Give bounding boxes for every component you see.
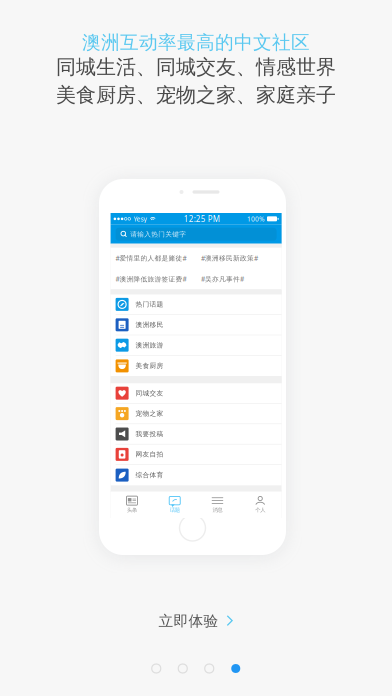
button[interactable]: 综合体育 (111, 465, 282, 485)
staticText: 网友自拍 (136, 450, 164, 458)
button[interactable]: 消息 (196, 491, 239, 518)
button[interactable]: 话题 (153, 491, 196, 518)
staticText: 100% (247, 214, 265, 223)
staticText: #澳洲移民新政策# (201, 254, 258, 263)
staticText: 澳洲移民 (136, 321, 164, 329)
button[interactable]: 头条 (111, 491, 153, 518)
button[interactable]: 个人 (239, 491, 282, 518)
button[interactable]: 宠物之家 (111, 404, 282, 424)
staticText: #澳洲降低旅游签证费# (116, 274, 187, 283)
staticText: 我要投稿 (136, 430, 164, 438)
button[interactable]: 我要投稿 (111, 424, 282, 444)
button[interactable]: #爱情里的人都是赌徒# (111, 248, 196, 269)
staticText: 头条 (127, 507, 137, 513)
staticText: Yesy (134, 214, 147, 223)
staticText: 热门话题 (136, 300, 164, 308)
staticText: 美食厨房 (136, 362, 164, 370)
staticText: 立即体验 (158, 612, 218, 630)
staticText: 个人 (255, 507, 265, 513)
staticText: 请输入热门关键字 (130, 230, 186, 238)
staticText: 12:25 PM (184, 213, 220, 224)
staticText: 同城交友 (136, 389, 164, 397)
button[interactable]: 网友自拍 (111, 444, 282, 465)
staticText: 澳洲旅游 (136, 341, 164, 349)
button[interactable]: 立即体验 (0, 606, 392, 636)
button[interactable]: #吴亦凡事件# (196, 269, 282, 289)
button[interactable]: 热门话题 (111, 294, 282, 315)
button[interactable]: 同城交友 (111, 383, 282, 404)
staticText: 美食厨房、宠物之家、家庭亲子 (56, 83, 336, 107)
staticText: 综合体育 (136, 471, 164, 479)
button[interactable]: #澳洲移民新政策# (196, 248, 282, 269)
button[interactable]: 美食厨房 (111, 356, 282, 376)
staticText: 宠物之家 (136, 409, 164, 418)
button[interactable]: 澳洲移民 (111, 315, 282, 335)
staticText: 消息 (212, 507, 222, 513)
staticText: 同城生活、同城交友、情感世界 (56, 55, 336, 79)
staticText: 澳洲互动率最高的中文社区 (82, 31, 310, 54)
staticText: 话题 (170, 507, 180, 513)
staticText: #爱情里的人都是赌徒# (116, 254, 187, 263)
staticText: #吴亦凡事件# (201, 274, 244, 283)
button[interactable]: 澳洲旅游 (111, 335, 282, 356)
button[interactable]: #澳洲降低旅游签证费# (111, 269, 196, 289)
